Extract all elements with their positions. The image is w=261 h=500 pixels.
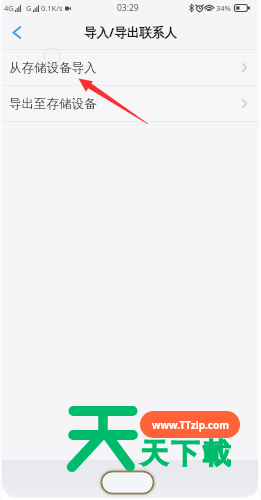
button[interactable]: Back [0,15,34,49]
staticText: 03:29 [117,2,139,14]
staticText: www.TTzip.com [152,418,229,432]
staticText: 导入/导出联系人 [84,24,177,41]
staticText: 导出至存储设备 [9,96,97,112]
staticText: 天下載 [140,436,234,471]
staticText: 34% [216,3,231,13]
button[interactable]: 导出至存储设备 [0,86,261,121]
button[interactable]: Home [100,470,155,495]
staticText: G [26,3,32,13]
staticText: 从存储设备导入 [9,60,97,76]
staticText: 0.1K/s [41,3,63,13]
staticText: 4G [4,3,14,13]
button[interactable]: 从存储设备导入 [0,50,261,85]
